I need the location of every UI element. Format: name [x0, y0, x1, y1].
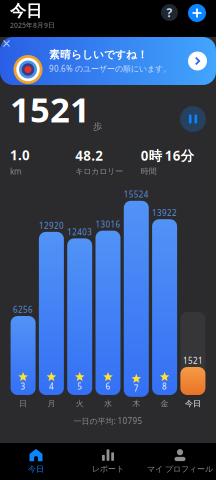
- staticText: 13922: [152, 208, 177, 218]
- staticText: 90.6% のユーザーの順にいます。: [49, 63, 171, 74]
- staticText: 月: [47, 399, 55, 408]
- staticText: ?: [166, 4, 172, 20]
- staticText: 12403: [67, 227, 92, 237]
- button[interactable]: 今日: [0, 443, 72, 480]
- button[interactable]: Pause: [180, 106, 206, 132]
- staticText: 金: [161, 399, 169, 408]
- staticText: 1521: [10, 86, 90, 132]
- staticText: レポート: [92, 464, 124, 474]
- staticText: マイ プロフィール: [147, 464, 213, 474]
- staticText: 3: [21, 381, 26, 392]
- staticText: 8: [162, 381, 167, 392]
- staticText: 0時 16分: [141, 147, 194, 164]
- staticText: 1.0: [10, 146, 30, 164]
- staticText: 素晴らしいですね！: [49, 48, 148, 61]
- button[interactable]: Add: [188, 4, 206, 22]
- staticText: 時間: [141, 166, 157, 176]
- staticText: 7: [134, 383, 139, 394]
- staticText: 6256: [13, 304, 33, 315]
- staticText: 木: [132, 399, 140, 408]
- button[interactable]: レポート: [72, 443, 144, 480]
- staticText: 火: [76, 399, 84, 408]
- button[interactable]: Close: [0, 37, 13, 50]
- button[interactable]: 素晴らしいですね！: [0, 37, 216, 85]
- staticText: 12920: [39, 220, 64, 231]
- staticText: 2025年8月9日: [10, 21, 55, 30]
- staticText: 今日: [28, 464, 44, 474]
- staticText: 5: [77, 381, 82, 392]
- staticText: 今日: [185, 399, 201, 408]
- staticText: 48.2: [75, 147, 103, 164]
- staticText: 15524: [124, 189, 149, 200]
- staticText: 歩: [90, 121, 102, 132]
- staticText: km: [10, 166, 21, 177]
- button[interactable]: マイ プロフィール: [144, 443, 216, 480]
- staticText: キロカロリー: [75, 166, 123, 176]
- staticText: 日: [19, 399, 27, 408]
- staticText: 水: [104, 399, 112, 408]
- staticText: 今日: [10, 1, 42, 21]
- staticText: 4: [49, 381, 54, 392]
- button[interactable]: Help: [161, 4, 178, 21]
- staticText: 6: [105, 381, 110, 392]
- staticText: 1521: [183, 355, 203, 366]
- staticText: 13016: [95, 219, 120, 230]
- staticText: 一日の平均: 10795: [73, 416, 142, 426]
